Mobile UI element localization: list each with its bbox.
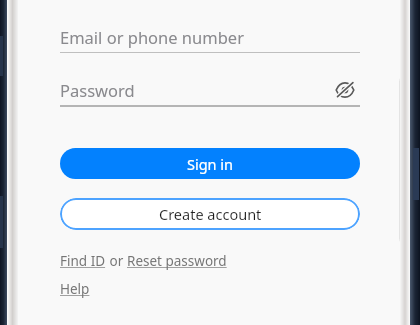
button[interactable]: Password <box>60 79 330 101</box>
button[interactable]: Reset password <box>127 252 227 270</box>
button[interactable]: Show password <box>330 75 360 105</box>
staticText: Help <box>60 280 90 298</box>
staticText: or <box>106 252 127 270</box>
staticText: Reset password <box>127 252 227 270</box>
staticText: Password <box>60 79 135 101</box>
staticText: Find ID <box>60 252 106 270</box>
button[interactable]: Find ID <box>60 252 106 270</box>
staticText: Create account <box>159 204 262 224</box>
staticText: Email or phone number <box>60 26 244 48</box>
button[interactable]: Sign in <box>60 148 360 179</box>
button[interactable]: Email or phone number <box>60 22 360 52</box>
button[interactable]: Help <box>60 280 90 298</box>
staticText: Sign in <box>187 154 234 174</box>
button[interactable]: Create account <box>60 198 360 230</box>
